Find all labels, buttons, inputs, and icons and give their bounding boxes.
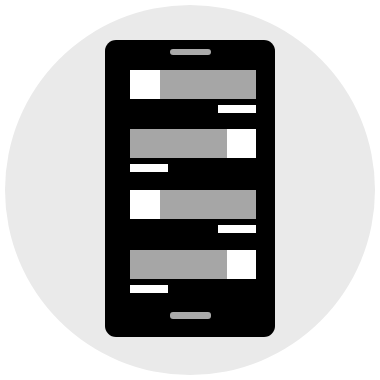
button[interactable]: List item 2	[130, 129, 256, 172]
button[interactable]: List item 3	[130, 190, 256, 233]
button[interactable]: Mobile device preview	[105, 40, 275, 337]
button[interactable]: List item 4	[130, 250, 256, 293]
button[interactable]: List item 1	[130, 70, 256, 113]
